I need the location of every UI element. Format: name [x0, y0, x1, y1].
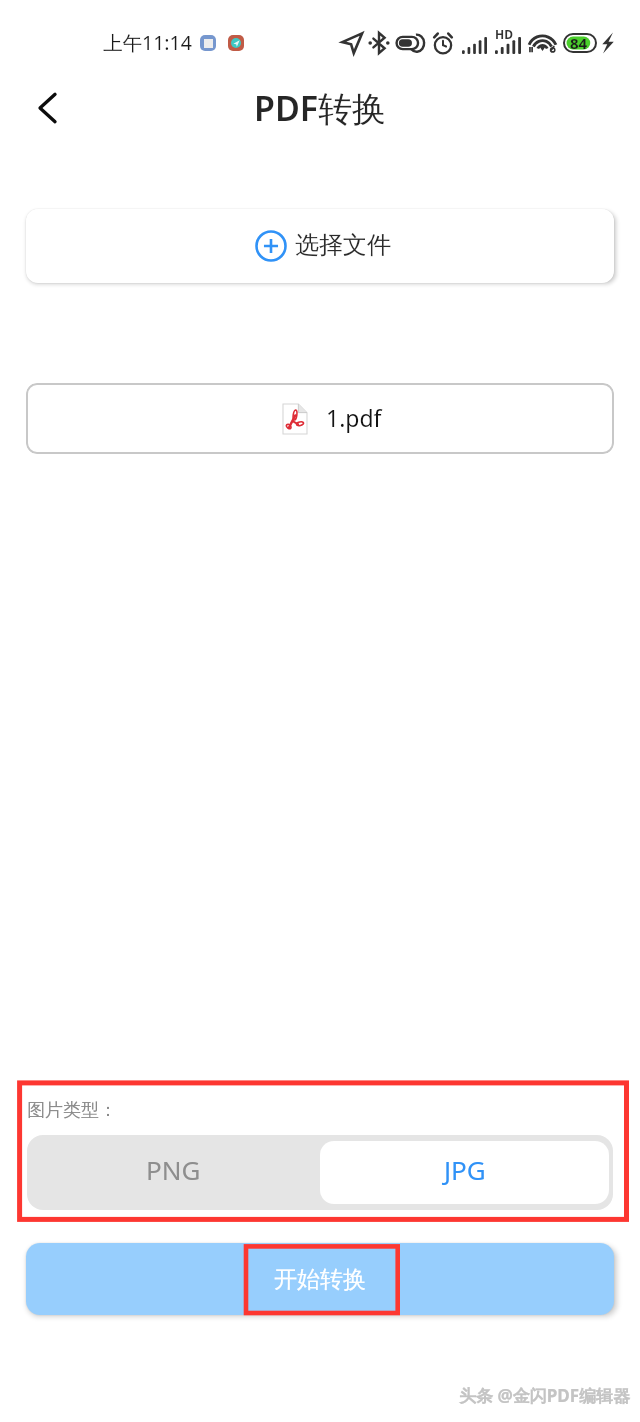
staticText: PDF转换 [254, 85, 387, 131]
button[interactable]: 选择文件 [26, 209, 614, 283]
button[interactable]: JPG [320, 1141, 609, 1204]
staticText: 开始转换 [274, 1265, 366, 1294]
staticText: 头条 @金闪PDF编辑器 [459, 1384, 631, 1407]
staticText: 选择文件 [295, 230, 391, 260]
staticText: PNG [146, 1152, 201, 1187]
staticText: JPG [444, 1152, 486, 1187]
button[interactable]: 开始转换 [26, 1243, 614, 1315]
button[interactable]: 1.pdf [26, 383, 614, 454]
button[interactable]: PNG [27, 1135, 320, 1210]
staticText: 1.pdf [326, 402, 382, 433]
staticText: HD [495, 26, 513, 42]
staticText: 84 [570, 33, 588, 53]
staticText: 上午11:14 [103, 29, 192, 56]
staticText: 图片类型： [27, 1099, 117, 1122]
button[interactable]: Back [20, 80, 76, 136]
